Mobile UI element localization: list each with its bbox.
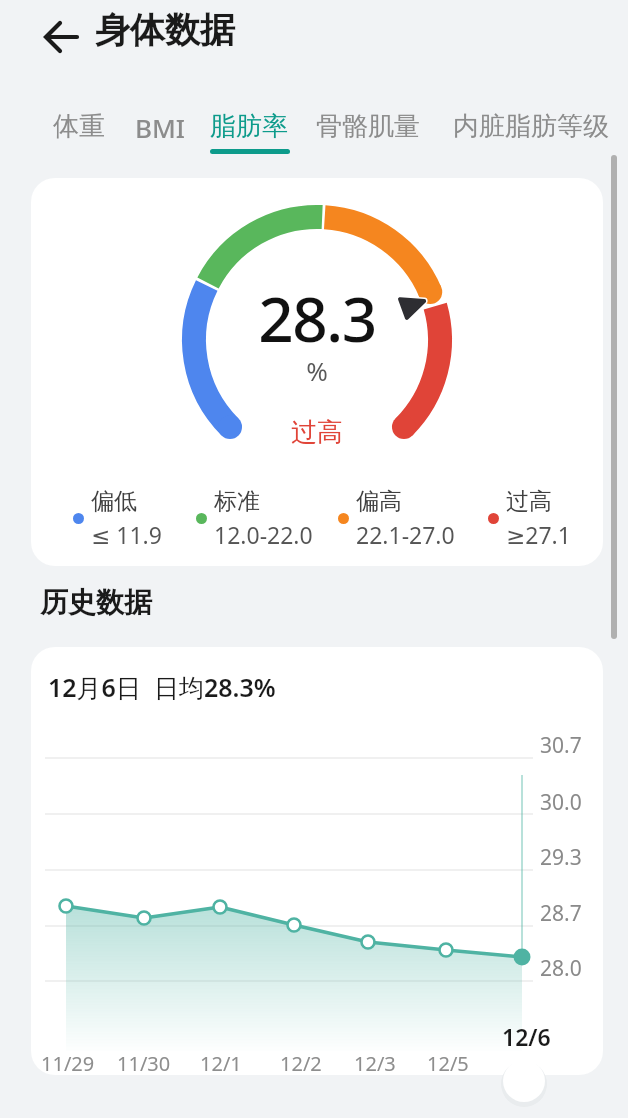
staticText: 12月6日 日均28.3%: [48, 670, 276, 704]
staticText: 12/1: [200, 1050, 242, 1075]
staticText: 11/30: [117, 1050, 171, 1075]
staticText: 28.0: [540, 954, 582, 983]
staticText: 内脏脂肪等级: [453, 110, 609, 143]
staticText: 22.1-27.0: [356, 519, 455, 550]
staticText: 12/2: [280, 1050, 322, 1075]
button[interactable]: [36, 12, 86, 62]
staticText: 28.7: [540, 899, 582, 928]
staticText: 12.0-22.0: [214, 519, 313, 550]
staticText: 12/3: [354, 1050, 396, 1075]
staticText: ≥27.1: [506, 519, 571, 550]
button[interactable]: 骨骼肌量: [308, 104, 428, 149]
staticText: 偏高: [356, 487, 402, 516]
staticText: 脂肪率: [210, 110, 288, 143]
button[interactable]: 内脏脂肪等级: [445, 104, 617, 149]
staticText: 12/5: [427, 1050, 469, 1075]
button[interactable]: [503, 1060, 545, 1102]
staticText: %: [31, 353, 603, 388]
staticText: 30.0: [540, 788, 582, 817]
staticText: 标准: [214, 487, 260, 516]
staticText: 身体数据: [95, 8, 235, 52]
staticText: 过高: [506, 487, 552, 516]
button[interactable]: 体重: [45, 104, 113, 149]
staticText: 骨骼肌量: [316, 110, 420, 143]
button[interactable]: BMI: [127, 104, 194, 151]
staticText: 12/6: [502, 1021, 551, 1052]
staticText: 过高: [31, 416, 603, 449]
staticText: 30.7: [540, 731, 582, 760]
staticText: 29.3: [540, 843, 582, 872]
staticText: BMI: [135, 110, 186, 145]
staticText: 11/29: [41, 1050, 95, 1075]
staticText: ≤ 11.9: [91, 519, 162, 550]
staticText: 偏低: [91, 487, 137, 516]
staticText: 体重: [53, 110, 105, 143]
staticText: 历史数据: [40, 585, 152, 620]
button[interactable]: 脂肪率: [202, 104, 296, 149]
staticText: 28.3: [31, 276, 603, 360]
